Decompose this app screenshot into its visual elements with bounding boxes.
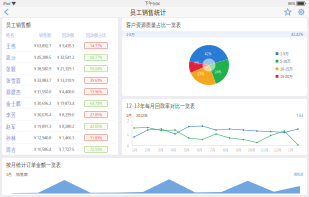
staticText: ¥ 21,329.1 — [57, 66, 74, 71]
staticText: 0 — [127, 144, 129, 148]
staticText: 5月 — [184, 148, 189, 152]
staticText: 27.05% — [90, 112, 102, 117]
staticText: ¥ 63,892.7 — [34, 43, 51, 48]
staticText: 1-5万 — [126, 31, 135, 37]
staticText: 金士鹏 — [6, 100, 21, 107]
staticText: 11月 — [261, 148, 268, 152]
staticText: ¥ 33,883.7 — [34, 77, 51, 83]
staticText: 10月 — [248, 148, 255, 152]
button[interactable]: 周吉 — [2, 143, 118, 155]
button[interactable]: 李芳 — [2, 109, 118, 120]
button[interactable]: 赵军 — [2, 120, 118, 132]
button[interactable]: 王伟 — [2, 40, 118, 51]
staticText: 1月 — [6, 171, 12, 177]
staticText: ¥ 12,940.8 — [34, 135, 51, 140]
staticText: 64.74% — [90, 101, 102, 106]
staticText: 42.42% — [291, 32, 303, 37]
staticText: 2 — [127, 118, 129, 123]
staticText: 赵军 — [6, 123, 16, 130]
staticText: ¥ 9,435.3 — [59, 43, 74, 48]
staticText: ¥ 31,550.0 — [34, 89, 51, 94]
button[interactable]: 凯沙 — [2, 51, 118, 63]
staticText: ¥ 38,580.9 — [34, 66, 51, 71]
staticText: ¥ 30,696.2 — [34, 100, 51, 106]
staticText: 39.69% — [90, 78, 102, 83]
button[interactable]: 孙林 — [2, 132, 118, 143]
staticText: 2月 — [145, 148, 150, 152]
staticText: 张雪眉 — [6, 77, 21, 84]
staticText: 1.63 — [296, 113, 303, 118]
staticText: 68.77% — [90, 55, 102, 60]
staticText: ¥ 10,586.4 — [34, 146, 51, 152]
staticText: ¥ 4,400.0 — [59, 89, 74, 94]
staticText: 12月 — [274, 148, 281, 152]
staticText: 郑建杰 — [6, 88, 21, 95]
staticText: 12-13年每月回款率对比一览表 — [126, 102, 195, 109]
staticText: 周吉 — [6, 146, 16, 153]
staticText: 72.93% — [90, 147, 102, 152]
staticText: 15-20万 — [280, 74, 293, 79]
staticText: 1月 — [288, 148, 293, 152]
staticText: 6月 — [197, 148, 202, 152]
staticText: 客户资源质量占比一览表 — [126, 21, 181, 28]
staticText: 23% — [197, 72, 204, 76]
staticText: 86% — [288, 1, 295, 6]
staticText: 11.89% — [90, 135, 102, 140]
staticText: 销售额 — [16, 171, 28, 177]
staticText: ¥ 13,210.9 — [57, 77, 74, 83]
staticText: ¥ 19,873.4 — [57, 100, 74, 106]
staticText: 24% — [214, 70, 221, 74]
staticText: 姓名 — [6, 33, 14, 38]
staticText: 李芳 — [6, 111, 16, 118]
staticText: 1 — [127, 132, 129, 137]
staticText: 凯沙 — [6, 54, 16, 61]
staticText: 59.04% — [90, 66, 102, 71]
staticText: ¥ 8,280.2 — [59, 123, 74, 129]
staticText: 张颖 — [6, 65, 16, 72]
staticText: 员工销售额 — [6, 21, 31, 28]
button[interactable]: 返回 — [0, 7, 15, 17]
staticText: 回款额 — [62, 33, 74, 38]
staticText: 孙林 — [6, 134, 16, 141]
staticText: 销售额 — [39, 33, 51, 38]
staticText: 4月 — [171, 148, 176, 152]
staticText: 7月 — [210, 148, 215, 152]
staticText: 10-15万 — [280, 66, 293, 71]
staticText: 13.96% — [90, 89, 102, 94]
button[interactable]: 张雪眉 — [2, 74, 118, 86]
staticText: ¥ 7,727.5 — [59, 146, 74, 152]
staticText: 员工销售统计 — [130, 8, 166, 16]
staticText: 1-5万 — [280, 51, 289, 56]
button[interactable]: 金士鹏 — [2, 97, 118, 109]
staticText: 42.05% — [90, 124, 102, 129]
staticText: 下午9:04 — [144, 1, 159, 6]
button[interactable]: 张颖 — [2, 63, 118, 74]
staticText: 42% — [204, 52, 211, 56]
staticText: 3月 — [158, 148, 163, 152]
staticText: 9月 — [236, 148, 241, 152]
button[interactable]: 设置 — [294, 7, 309, 17]
staticText: 14.77% — [90, 43, 102, 48]
staticText: 1月 — [132, 148, 137, 152]
staticText: ¥ 8,299.0 — [59, 112, 74, 117]
staticText: 王伟 — [6, 42, 16, 49]
staticText: 按月统计订单金额一览表 — [6, 161, 61, 168]
staticText: 800.8 — [294, 172, 303, 177]
button[interactable]: 收藏 — [281, 7, 294, 17]
staticText: ¥ 19,891.3 — [34, 123, 51, 129]
staticText: 1月 — [126, 112, 132, 118]
staticText: ¥ 32,541.2 — [57, 54, 74, 60]
staticText: 5-10万 — [280, 58, 291, 64]
staticText: 9% — [194, 61, 199, 65]
staticText: ¥ 1,466.3 — [59, 135, 74, 140]
staticText: 8月 — [223, 148, 228, 152]
staticText: 2012年 — [136, 112, 148, 118]
staticText: ¥ 30,676.4 — [34, 112, 51, 117]
staticText: iPad — [3, 1, 10, 6]
staticText: ¥ 45,288.5 — [34, 54, 51, 60]
button[interactable]: 郑建杰 — [2, 86, 118, 97]
staticText: 回款额占比 — [86, 33, 106, 38]
